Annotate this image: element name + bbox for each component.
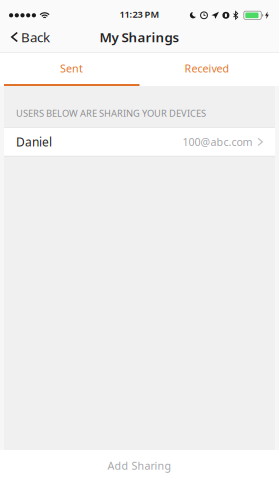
staticText: USERS BELOW ARE SHARING YOUR DEVICES — [16, 107, 206, 119]
staticText: Sent — [60, 61, 83, 75]
staticText: Back — [21, 28, 50, 46]
staticText: 100@abc.com — [182, 135, 252, 149]
button[interactable]: Daniel — [4, 128, 275, 156]
button[interactable]: Received — [139, 52, 275, 84]
button[interactable]: Add Sharing — [0, 450, 279, 481]
staticText: Daniel — [16, 134, 52, 150]
staticText: My Sharings — [99, 28, 179, 46]
button[interactable]: Back — [0, 22, 60, 52]
staticText: 11:23 PM — [119, 8, 159, 20]
staticText: Received — [184, 61, 229, 75]
button[interactable]: Sent — [4, 52, 139, 84]
staticText: Add Sharing — [107, 458, 171, 473]
